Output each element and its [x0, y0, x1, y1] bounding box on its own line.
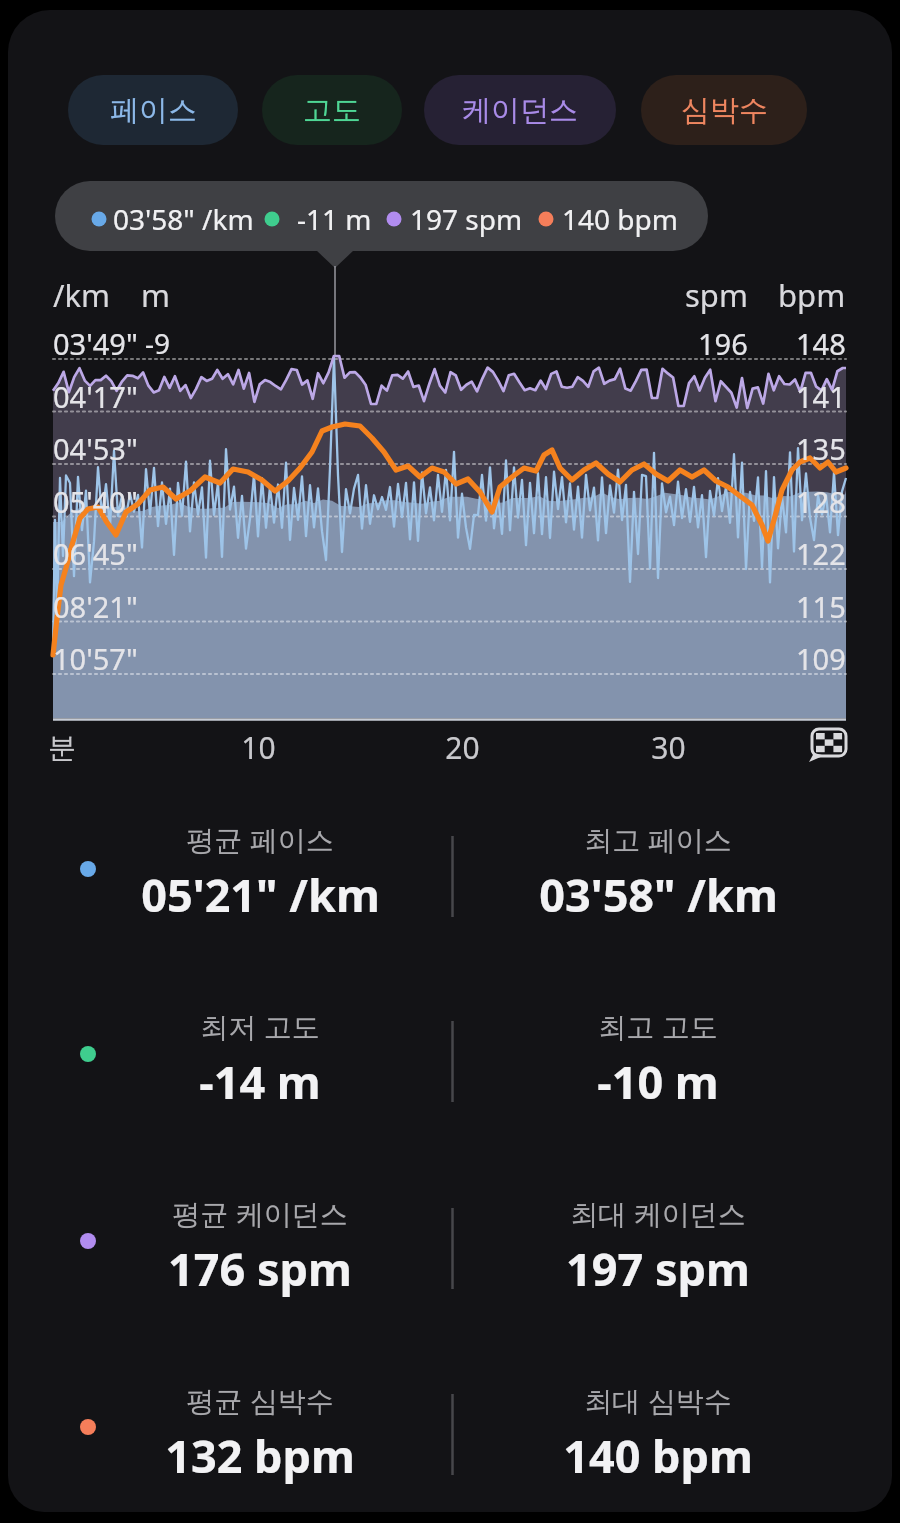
- staticText: 04'17": [53, 377, 138, 416]
- staticText: 05'40": [53, 482, 138, 521]
- staticText: 109: [796, 639, 846, 678]
- staticText: 10: [241, 727, 276, 768]
- staticText: 최고 고도: [598, 1007, 718, 1045]
- button[interactable]: [55, 181, 708, 251]
- button[interactable]: 심박수: [641, 75, 807, 145]
- button[interactable]: 케이던스: [424, 75, 616, 145]
- staticText: 08'21": [53, 587, 138, 626]
- staticText: 최대 케이던스: [570, 1194, 746, 1232]
- staticText: 196: [698, 324, 748, 363]
- staticText: 197 spm: [410, 200, 523, 238]
- button[interactable]: 페이스: [68, 75, 238, 145]
- staticText: 05'21" /km: [141, 864, 380, 925]
- staticText: /km: [53, 274, 111, 316]
- staticText: m: [141, 274, 170, 316]
- staticText: -9: [145, 324, 171, 362]
- staticText: 141: [796, 377, 846, 416]
- staticText: 135: [796, 429, 846, 468]
- staticText: 평균 케이던스: [172, 1194, 348, 1232]
- staticText: 30: [651, 727, 686, 768]
- staticText: 132 bpm: [165, 1425, 355, 1486]
- staticText: 심박수: [681, 92, 768, 129]
- staticText: 케이던스: [462, 92, 578, 129]
- staticText: 분: [48, 730, 76, 765]
- staticText: -11 m: [297, 200, 372, 238]
- staticText: 03'49": [53, 324, 138, 363]
- staticText: 페이스: [110, 92, 197, 129]
- staticText: bpm: [778, 274, 846, 316]
- staticText: 176 spm: [168, 1238, 352, 1299]
- staticText: 10'57": [53, 639, 138, 678]
- staticText: 03'58" /km: [113, 200, 254, 238]
- staticText: 최대 심박수: [584, 1381, 732, 1419]
- staticText: -10 m: [597, 1051, 719, 1112]
- staticText: 03'58" /km: [539, 864, 778, 925]
- staticText: 128: [796, 482, 846, 521]
- staticText: 197 spm: [566, 1238, 750, 1299]
- staticText: 122: [796, 534, 846, 573]
- staticText: 140 bpm: [562, 200, 678, 238]
- staticText: 최고 페이스: [584, 820, 732, 858]
- staticText: 115: [796, 587, 846, 626]
- staticText: 06'45": [53, 534, 138, 573]
- staticText: 평균 심박수: [186, 1381, 334, 1419]
- staticText: 평균 페이스: [186, 820, 334, 858]
- button[interactable]: 고도: [262, 75, 402, 145]
- staticText: 20: [445, 727, 480, 768]
- staticText: spm: [685, 274, 748, 316]
- staticText: 최저 고도: [200, 1007, 320, 1045]
- staticText: 140 bpm: [563, 1425, 753, 1486]
- staticText: 04'53": [53, 429, 138, 468]
- staticText: 고도: [303, 92, 361, 129]
- staticText: 148: [796, 324, 846, 363]
- staticText: -14 m: [199, 1051, 321, 1112]
